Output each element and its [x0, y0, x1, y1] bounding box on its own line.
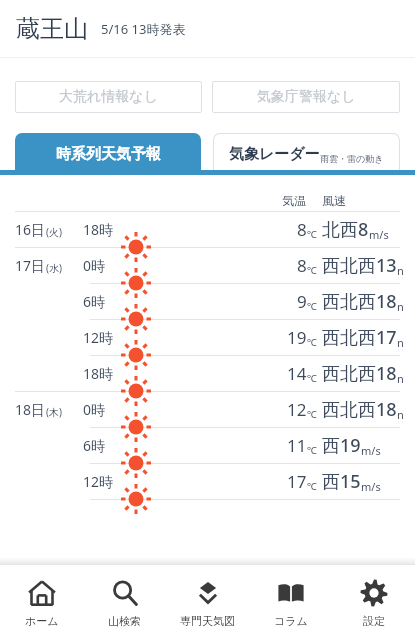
staticText: ℃ — [307, 335, 317, 349]
staticText: n — [397, 299, 400, 314]
staticText: ℃ — [307, 227, 317, 241]
staticText: 12時 — [83, 472, 114, 491]
staticText: 17日 — [15, 256, 46, 275]
button[interactable]: 6時 — [0, 284, 400, 319]
staticText: 西北西17 — [322, 325, 397, 350]
staticText: 雨雲・雷の動き — [320, 153, 384, 164]
button[interactable]: 12時 — [0, 464, 400, 499]
button[interactable]: 16日 — [0, 212, 400, 247]
staticText: 西北西18 — [322, 361, 397, 386]
staticText: 9 — [297, 290, 307, 313]
staticText: 18時 — [83, 364, 114, 383]
staticText: ℃ — [307, 479, 317, 493]
staticText: 西北西18 — [322, 397, 397, 422]
staticText: 6時 — [83, 292, 106, 311]
button[interactable]: 専門天気図 — [166, 565, 249, 640]
staticText: ホーム — [25, 614, 59, 628]
staticText: (火) — [46, 225, 62, 239]
staticText: 山検索 — [108, 614, 141, 628]
staticText: 時系列天気予報 — [56, 145, 161, 164]
button[interactable]: 12時 — [0, 320, 400, 355]
staticText: 18日 — [15, 400, 46, 419]
button[interactable]: 18時 — [0, 356, 400, 391]
staticText: 14 — [287, 362, 307, 385]
button[interactable]: 気象レーダー — [213, 133, 400, 175]
staticText: 蔵王山 — [16, 14, 88, 44]
staticText: m/s — [361, 443, 381, 458]
staticText: 17 — [287, 470, 307, 493]
staticText: ℃ — [307, 371, 317, 385]
staticText: 専門天気図 — [180, 614, 235, 628]
staticText: 気象レーダー — [229, 145, 320, 164]
staticText: 気象庁警報なし — [257, 88, 356, 106]
staticText: 北西8 — [322, 217, 369, 242]
staticText: 0時 — [83, 256, 106, 275]
staticText: 設定 — [363, 614, 385, 628]
staticText: (水) — [46, 261, 62, 275]
button[interactable]: ホーム — [0, 565, 83, 640]
button[interactable]: 17日 — [0, 248, 400, 283]
button[interactable]: コラム — [249, 565, 332, 640]
button[interactable]: 18日 — [0, 392, 400, 427]
staticText: 12 — [287, 398, 307, 421]
button[interactable]: 気象庁警報なし — [212, 81, 400, 113]
staticText: ℃ — [307, 263, 317, 277]
staticText: 16日 — [15, 220, 46, 239]
staticText: 5/16 13時発表 — [101, 20, 186, 38]
staticText: n — [397, 407, 400, 422]
staticText: 8 — [297, 218, 307, 241]
button[interactable]: 設定 — [332, 565, 415, 640]
staticText: 18時 — [83, 220, 114, 239]
staticText: 11 — [287, 434, 307, 457]
staticText: n — [397, 263, 400, 278]
staticText: 6時 — [83, 436, 106, 455]
staticText: 西19 — [322, 433, 361, 458]
staticText: 19 — [287, 326, 307, 349]
staticText: 西15 — [322, 469, 361, 494]
button[interactable]: 山検索 — [83, 565, 166, 640]
staticText: 12時 — [83, 328, 114, 347]
staticText: コラム — [274, 614, 308, 628]
staticText: n — [397, 371, 400, 386]
staticText: 大荒れ情報なし — [59, 88, 158, 106]
button[interactable]: 時系列天気予報 — [15, 133, 201, 175]
staticText: (木) — [46, 405, 62, 419]
staticText: 西北西18 — [322, 289, 397, 314]
staticText: 気温 — [282, 193, 306, 208]
staticText: n — [397, 335, 400, 350]
staticText: 0時 — [83, 400, 106, 419]
staticText: m/s — [369, 227, 389, 242]
button[interactable]: 大荒れ情報なし — [15, 81, 202, 113]
staticText: 風速 — [322, 193, 346, 208]
staticText: 西北西13 — [322, 253, 397, 278]
staticText: ℃ — [307, 443, 317, 457]
button[interactable]: 6時 — [0, 428, 400, 463]
staticText: ℃ — [307, 407, 317, 421]
staticText: ℃ — [307, 299, 317, 313]
staticText: m/s — [361, 479, 381, 494]
staticText: 8 — [297, 254, 307, 277]
